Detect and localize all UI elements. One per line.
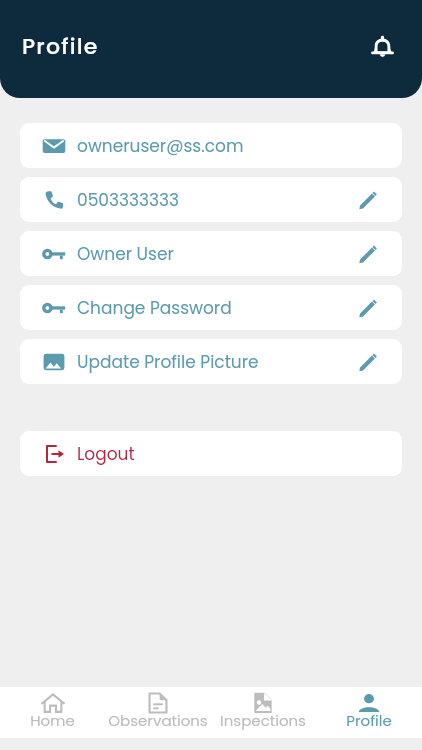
staticText: Observations: [108, 710, 208, 731]
staticText: Change Password: [77, 296, 232, 320]
button[interactable]: Inspections: [210, 687, 316, 738]
button[interactable]: Edit: [356, 350, 380, 374]
staticText: Update Profile Picture: [77, 350, 259, 374]
button[interactable]: Update Profile Picture: [20, 339, 402, 384]
button[interactable]: Observations: [105, 687, 210, 738]
staticText: Profile: [22, 31, 99, 62]
staticText: Profile: [346, 710, 392, 731]
button[interactable]: Edit: [356, 242, 380, 266]
button[interactable]: Profile: [316, 687, 422, 738]
staticText: Inspections: [220, 710, 306, 731]
staticText: 0503333333: [77, 188, 180, 212]
button[interactable]: Logout: [20, 431, 402, 476]
button[interactable]: Change Password: [20, 285, 402, 330]
button[interactable]: Edit: [356, 296, 380, 320]
staticText: Home: [30, 710, 75, 731]
staticText: owneruser@ss.com: [77, 134, 244, 158]
staticText: Owner User: [77, 242, 174, 266]
button[interactable]: owneruser@ss.com: [20, 123, 402, 168]
staticText: Logout: [77, 442, 135, 466]
button[interactable]: Edit: [356, 188, 380, 212]
button[interactable]: Home: [0, 687, 105, 738]
button[interactable]: Owner User: [20, 231, 402, 276]
button[interactable]: 0503333333: [20, 177, 402, 222]
button[interactable]: Notifications: [362, 27, 402, 67]
